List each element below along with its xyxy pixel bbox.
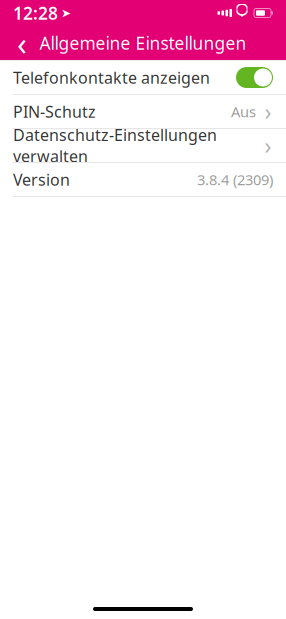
staticText: ‹ [17,22,27,64]
button[interactable]: Zurück [5,26,39,60]
staticText: 12:28 [13,1,58,24]
button[interactable]: Telefonkontakte anzeigen [0,61,286,94]
staticText: ➤ [61,6,71,20]
staticText: Datenschutz-Einstellungen verwalten [13,124,217,167]
staticText: Aus [231,102,256,121]
staticText: Version [13,169,70,190]
staticText: PIN-Schutz [13,101,96,122]
staticText: › [264,130,271,160]
button[interactable]: Datenschutz-Einstellungen verwalten [0,129,286,162]
staticText: › [264,96,271,126]
staticText: Allgemeine Einstellungen [39,31,246,54]
staticText: 3.8.4 (2309) [197,170,273,189]
staticText: Telefonkontakte anzeigen [13,67,210,88]
button[interactable]: PIN-Schutz [0,95,286,128]
